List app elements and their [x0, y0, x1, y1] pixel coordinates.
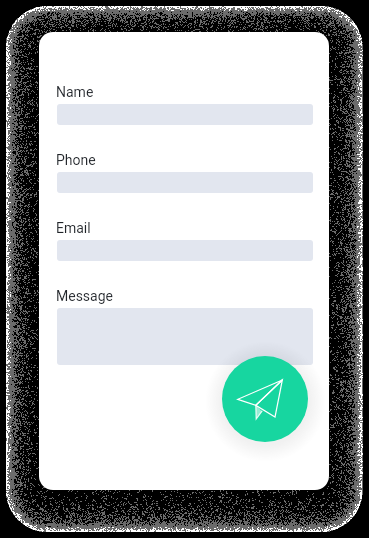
staticText: Phone: [56, 152, 96, 168]
staticText: Email: [56, 220, 91, 236]
staticText: Name: [56, 84, 94, 100]
button[interactable]: Send message: [222, 356, 308, 442]
staticText: Message: [56, 288, 113, 304]
button[interactable]: [57, 308, 313, 365]
